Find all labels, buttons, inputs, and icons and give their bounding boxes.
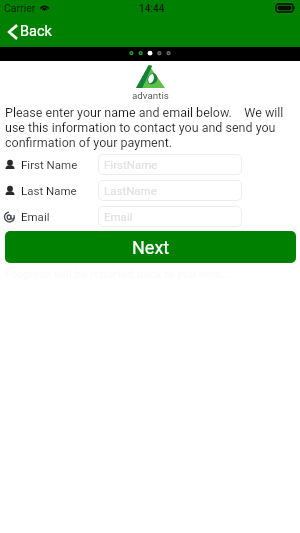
staticText: Next [132, 237, 170, 258]
staticText: Email [104, 210, 133, 223]
button[interactable]: Back [0, 19, 62, 44]
button[interactable]: LastName [98, 180, 242, 201]
staticText: Please enter your name and email below. … [5, 105, 295, 150]
staticText: 14:44 [139, 3, 165, 15]
button[interactable]: FirstName [98, 154, 242, 175]
staticText: FirstName [104, 158, 158, 171]
staticText: advantis [132, 90, 169, 101]
staticText: Back [20, 23, 52, 40]
button[interactable]: Next [5, 231, 296, 263]
staticText: Email [21, 210, 50, 223]
button[interactable]: Email [98, 206, 242, 227]
staticText: Carrier [4, 2, 36, 14]
staticText: Last Name [21, 184, 77, 197]
staticText: First Name [21, 158, 78, 171]
staticText: LastName [104, 184, 157, 197]
